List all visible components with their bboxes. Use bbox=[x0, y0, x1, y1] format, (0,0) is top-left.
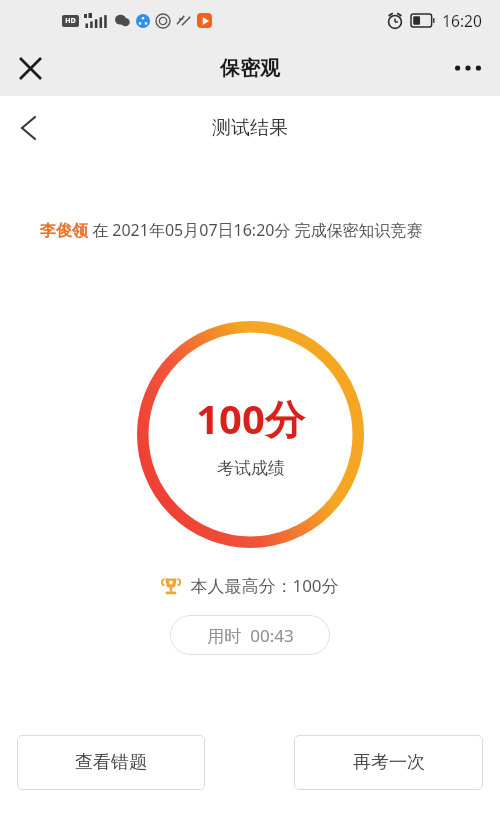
button[interactable]: 再考一次 bbox=[294, 735, 483, 790]
staticText: 16:20 bbox=[442, 10, 482, 31]
staticText: 李俊领 在 2021年05月07日16:20分 完成保密知识竞赛 bbox=[40, 219, 423, 241]
staticText: HD bbox=[65, 16, 76, 26]
staticText: 用时 00:43 bbox=[207, 624, 294, 647]
staticText: 再考一次 bbox=[353, 751, 425, 774]
button[interactable]: Close bbox=[6, 44, 54, 92]
staticText: 本人最高分：100分 bbox=[190, 574, 339, 597]
button[interactable]: 李俊领 在 2021年05月07日16:20分 完成保密知识竞赛 bbox=[18, 197, 482, 265]
staticText: 测试结果 bbox=[212, 116, 288, 140]
button[interactable]: Back bbox=[4, 104, 52, 152]
staticText: 考试成绩 bbox=[217, 458, 285, 479]
staticText: 保密观 bbox=[220, 56, 280, 81]
button[interactable]: 查看错题 bbox=[17, 735, 205, 790]
staticText: 100分 bbox=[196, 391, 305, 446]
button[interactable]: 用时 00:43 bbox=[170, 615, 330, 655]
button[interactable]: More options bbox=[444, 44, 492, 92]
staticText: 查看错题 bbox=[75, 751, 147, 774]
button[interactable]: 本人最高分：100分 bbox=[0, 574, 500, 597]
